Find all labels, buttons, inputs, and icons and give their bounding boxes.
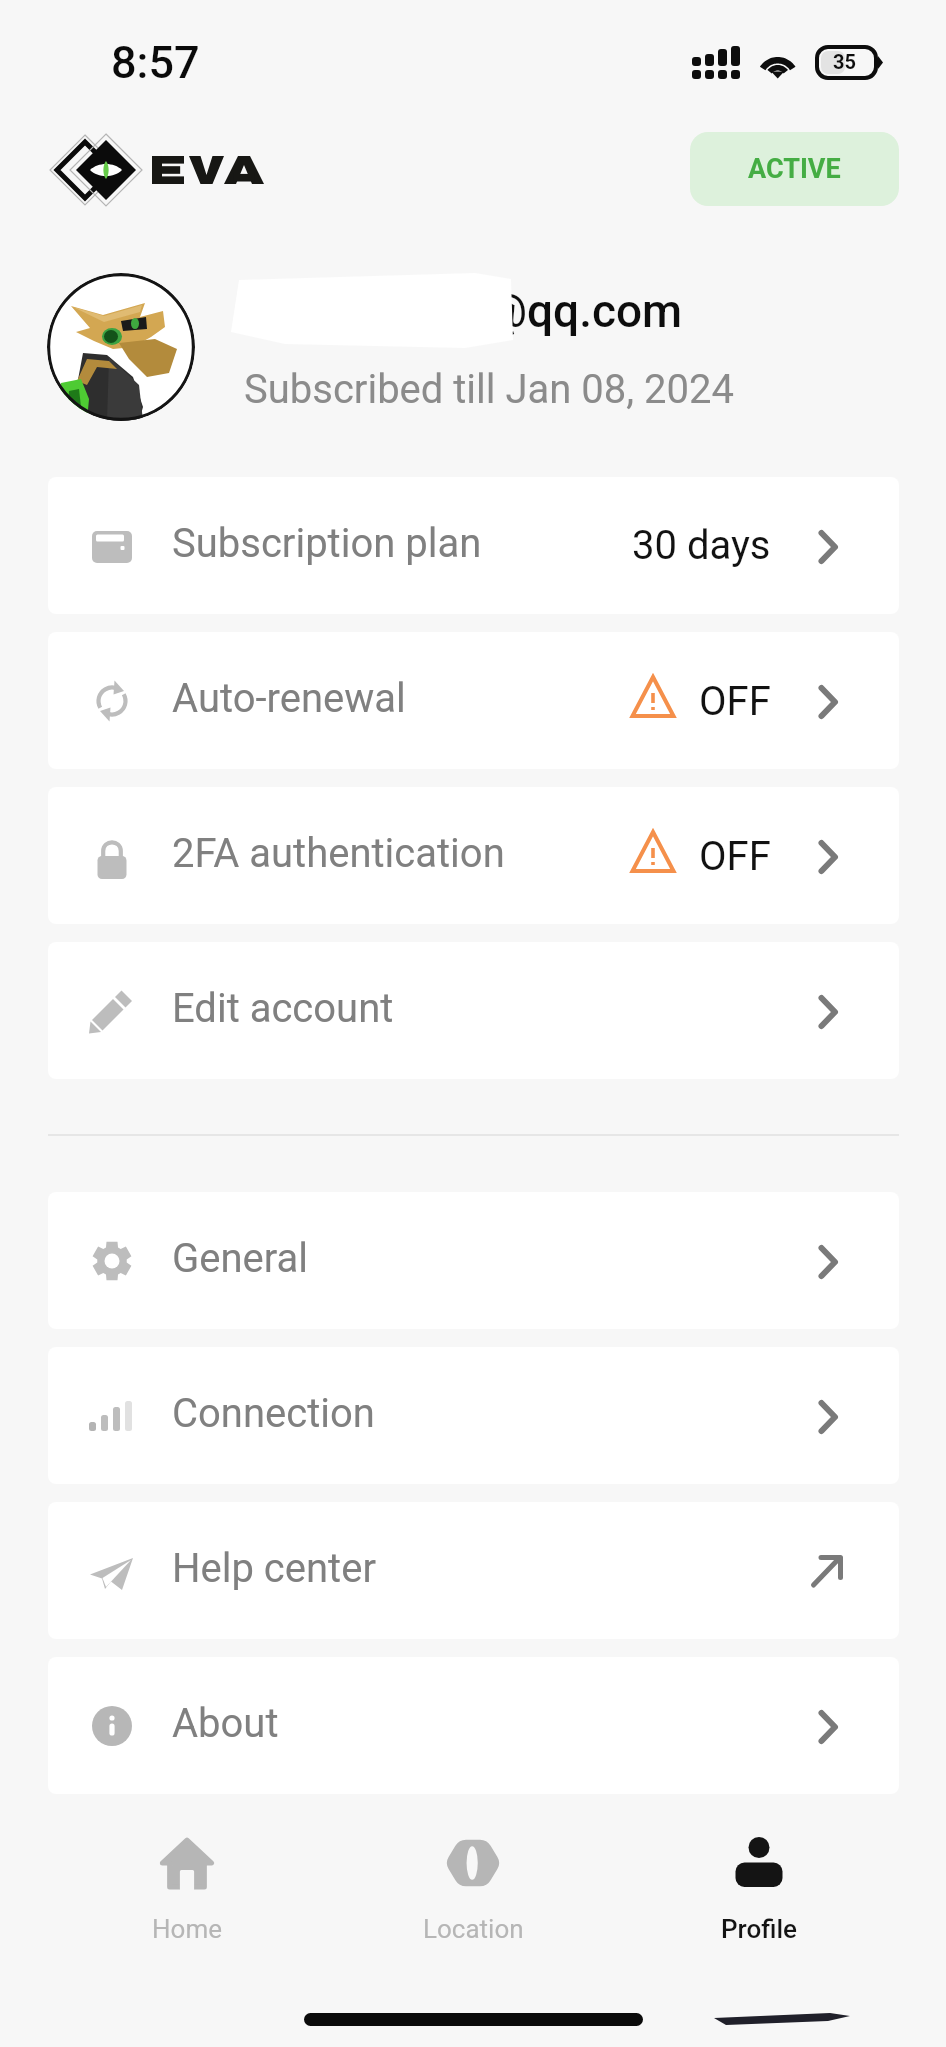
staticText: Subscribed till Jan 08, 2024 <box>244 366 734 413</box>
button[interactable]: Location <box>373 1820 573 1950</box>
staticText: 8:57 <box>111 36 200 89</box>
button[interactable]: ACTIVE <box>690 132 899 206</box>
staticText: 30 days <box>632 522 771 569</box>
button[interactable]: Connection <box>48 1347 899 1484</box>
staticText: Connection <box>172 1390 375 1437</box>
staticText: Home <box>152 1914 222 1944</box>
staticText: 35 <box>833 50 856 73</box>
staticText: ACTIVE <box>748 153 841 185</box>
staticText: Subscription plan <box>172 520 482 567</box>
staticText: ai88@qq.com <box>397 284 683 338</box>
staticText: Edit account <box>172 985 394 1032</box>
staticText: About <box>172 1700 279 1747</box>
button[interactable]: Edit account <box>48 942 899 1079</box>
staticText: Auto-renewal <box>172 675 406 722</box>
staticText: Profile <box>721 1914 797 1944</box>
staticText: Help center <box>172 1545 376 1592</box>
button[interactable]: General <box>48 1192 899 1329</box>
staticText: Location <box>423 1914 524 1944</box>
staticText: OFF <box>699 833 771 880</box>
staticText: General <box>172 1235 309 1282</box>
staticText: OFF <box>699 678 771 725</box>
staticText: 2FA authentication <box>172 830 505 877</box>
button[interactable]: 2FA authentication <box>48 787 899 924</box>
button[interactable]: Profile picture <box>47 273 195 421</box>
button[interactable]: About <box>48 1657 899 1794</box>
button[interactable]: Home <box>87 1820 287 1950</box>
button[interactable]: Subscription plan <box>48 477 899 614</box>
button[interactable]: Profile <box>659 1820 859 1950</box>
button[interactable]: Help center <box>48 1502 899 1639</box>
button[interactable]: Auto-renewal <box>48 632 899 769</box>
